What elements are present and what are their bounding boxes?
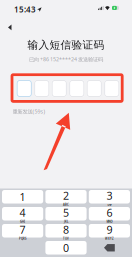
button[interactable]: 7 (2, 224, 43, 237)
staticText: 4 (20, 205, 26, 220)
staticText: 3 (106, 188, 112, 203)
button[interactable]: Back (2, 19, 17, 36)
staticText: 1 (20, 190, 26, 204)
staticText: 输入短信验证码 (27, 38, 104, 51)
button[interactable]: 8 (45, 224, 87, 237)
staticText: PQRS (19, 237, 26, 240)
button[interactable]: 1 (2, 190, 43, 203)
staticText: 9 (106, 222, 112, 237)
staticText: DEF (107, 203, 111, 206)
staticText: MNO (106, 220, 112, 223)
button[interactable]: 4 (2, 207, 43, 220)
button[interactable]: 0 (45, 241, 87, 254)
staticText: JKL (64, 220, 68, 223)
button[interactable]: 5 (45, 207, 87, 220)
button[interactable]: 6 (89, 207, 130, 220)
staticText: 7 (20, 222, 26, 237)
staticText: 已向 +86 152****24 发送验证码 (29, 56, 103, 63)
staticText: 8 (63, 222, 69, 237)
staticText: 5 (63, 205, 69, 220)
button[interactable]: Delete (89, 241, 130, 254)
staticText: GHI (20, 220, 25, 223)
staticText: TUV (63, 237, 69, 240)
button[interactable]: 2 (45, 190, 87, 203)
button[interactable]: 重新发送(59s) (10, 106, 47, 117)
staticText: 0 (63, 241, 69, 255)
staticText: ABC (63, 203, 69, 206)
staticText: WXYZ (105, 237, 114, 240)
button[interactable]: 9 (89, 224, 130, 237)
staticText: 重新发送(59s) (12, 108, 45, 115)
staticText: 2 (63, 188, 69, 203)
staticText: 6 (106, 205, 112, 220)
staticText: 15:43 (14, 4, 36, 15)
button[interactable]: 3 (89, 190, 130, 203)
